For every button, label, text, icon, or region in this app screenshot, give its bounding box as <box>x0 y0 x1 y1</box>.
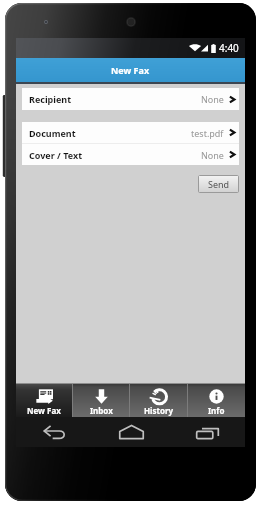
staticText: Send <box>208 178 230 190</box>
staticText: Document <box>29 127 76 139</box>
staticText: Inbox <box>90 405 113 416</box>
button[interactable]: Home <box>93 417 169 447</box>
button[interactable]: Send <box>199 176 238 192</box>
button[interactable]: History <box>130 384 187 417</box>
button[interactable]: Recents <box>169 417 245 447</box>
button[interactable]: Document <box>22 122 239 143</box>
button[interactable]: Cover / Text <box>22 144 239 165</box>
staticText: 4:40 <box>219 41 239 55</box>
button[interactable]: Recipient <box>22 88 239 110</box>
button[interactable]: Info <box>188 384 245 417</box>
staticText: New Fax <box>111 64 150 76</box>
button[interactable]: Inbox <box>73 384 129 417</box>
staticText: History <box>144 405 174 416</box>
staticText: None <box>201 149 224 161</box>
staticText: Info <box>208 405 225 416</box>
other: Home <box>119 425 144 439</box>
other: Back <box>43 425 66 439</box>
button[interactable]: New Fax <box>16 384 72 417</box>
other: Recents <box>196 425 219 439</box>
staticText: New Fax <box>27 405 61 416</box>
staticText: Cover / Text <box>29 149 83 161</box>
button[interactable]: Back <box>16 417 93 447</box>
staticText: None <box>201 93 224 105</box>
staticText: test.pdf <box>191 127 224 139</box>
staticText: Recipient <box>29 93 72 105</box>
